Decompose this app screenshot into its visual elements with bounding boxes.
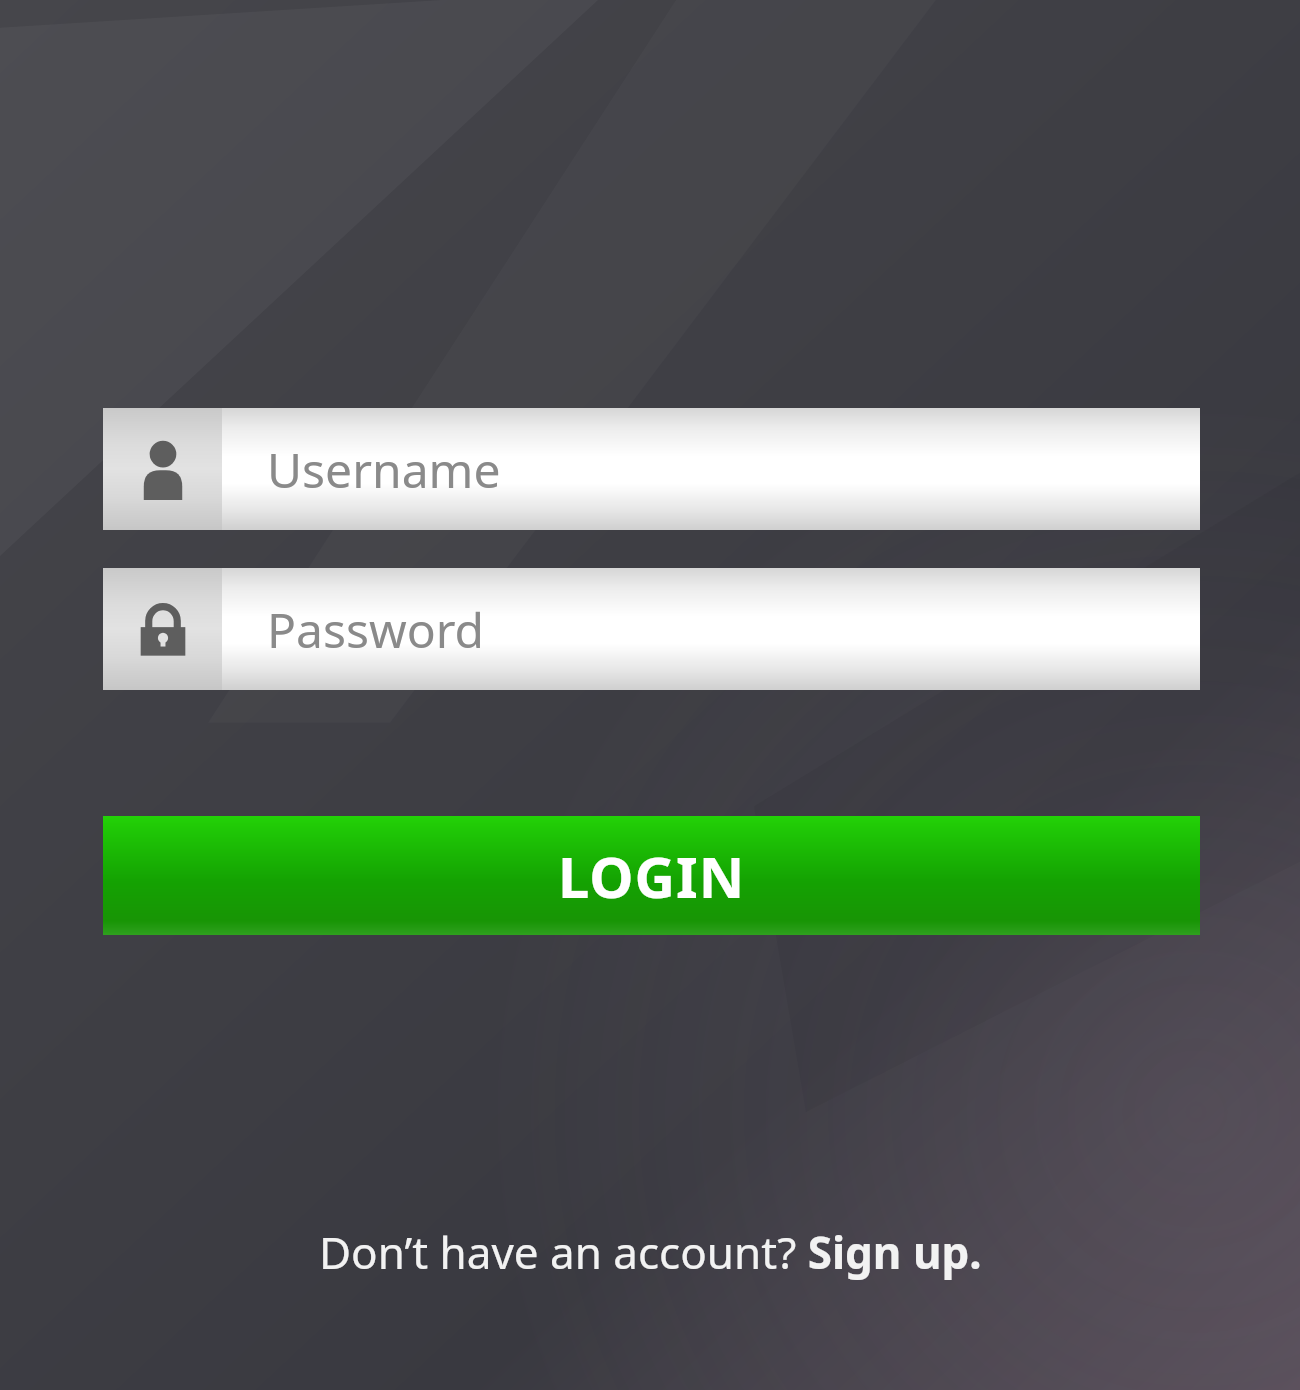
button[interactable]: Password <box>103 568 1200 690</box>
button[interactable]: Username <box>103 408 1200 530</box>
button[interactable]: Don’t have an account? Sign up. <box>319 1222 982 1282</box>
staticText: Password <box>267 597 485 662</box>
button[interactable]: LOGIN <box>103 816 1200 935</box>
staticText: Username <box>267 437 501 502</box>
other: Password <box>103 568 222 690</box>
staticText: LOGIN <box>558 838 746 914</box>
staticText: Don’t have an account? Sign up. <box>319 1222 982 1282</box>
other: Username <box>103 408 222 530</box>
